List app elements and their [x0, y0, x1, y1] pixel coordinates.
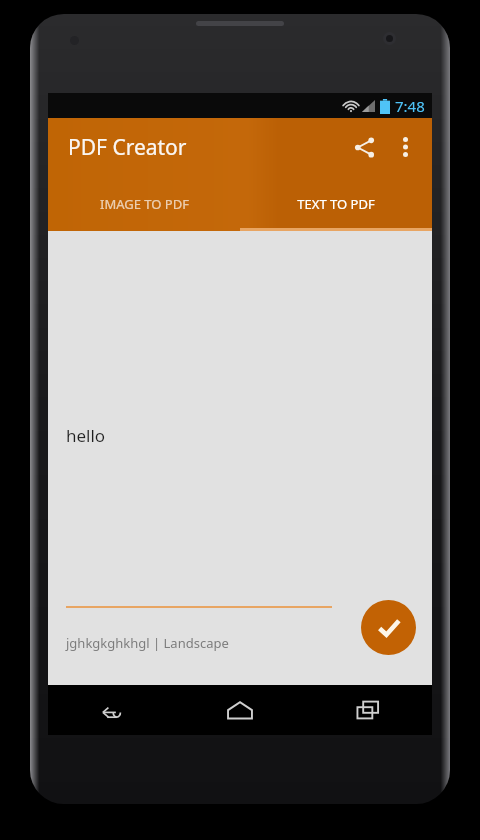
- staticText: hello: [66, 424, 106, 447]
- staticText: 7:48: [395, 96, 425, 116]
- button[interactable]: Create PDF: [361, 600, 416, 655]
- button[interactable]: Home: [176, 685, 304, 735]
- staticText: PDF Creator: [68, 133, 187, 162]
- staticText: IMAGE TO PDF: [100, 195, 189, 213]
- button[interactable]: More options: [386, 128, 424, 166]
- staticText: TEXT TO PDF: [297, 195, 375, 213]
- staticText: jghkgkghkhgl | Landscape: [66, 634, 229, 652]
- button[interactable]: TEXT TO PDF: [240, 176, 432, 231]
- button[interactable]: Back: [48, 685, 176, 735]
- button[interactable]: Recent apps: [304, 685, 432, 735]
- button[interactable]: IMAGE TO PDF: [48, 176, 240, 231]
- button[interactable]: Share: [342, 125, 386, 169]
